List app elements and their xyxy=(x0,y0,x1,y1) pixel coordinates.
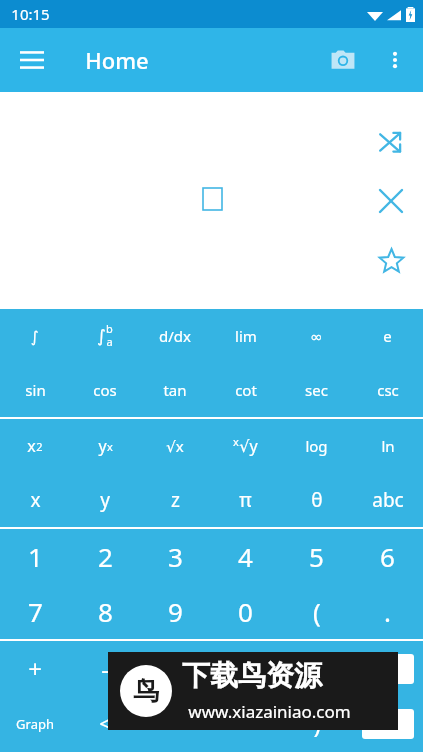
staticText: 下载鸟资源 xyxy=(182,658,322,693)
staticText: > xyxy=(169,710,181,737)
staticText: √y xyxy=(239,435,258,457)
button[interactable]: . xyxy=(352,584,423,639)
button[interactable]: x xyxy=(0,473,70,527)
button[interactable]: y xyxy=(70,473,140,527)
staticText: 9 xyxy=(168,594,183,629)
staticText: sec xyxy=(305,380,328,400)
button[interactable]: < xyxy=(70,696,140,751)
button[interactable]: 2 xyxy=(70,529,140,584)
staticText: y xyxy=(100,487,110,513)
button[interactable]: x xyxy=(0,419,70,473)
staticText: x xyxy=(233,434,239,449)
staticText: abc xyxy=(372,487,404,513)
staticText: www.xiazainiao.com xyxy=(188,700,351,723)
staticText: √x xyxy=(166,436,184,456)
staticText: ∞ xyxy=(310,328,323,345)
button[interactable]: √x xyxy=(140,419,210,473)
staticText: cot xyxy=(235,380,257,400)
button[interactable]: sec xyxy=(281,363,352,417)
button[interactable]: Clear xyxy=(369,179,413,223)
button[interactable]: 8 xyxy=(70,584,140,639)
button[interactable]: 4 xyxy=(210,529,281,584)
button[interactable]: Graph xyxy=(0,696,70,751)
button[interactable]: abc xyxy=(352,473,423,527)
button[interactable] xyxy=(352,641,423,696)
staticText: θ xyxy=(311,487,323,513)
button[interactable]: 3 xyxy=(140,529,210,584)
staticText: a xyxy=(106,334,113,349)
button[interactable]: ∞ xyxy=(281,309,352,363)
staticText: = xyxy=(310,652,324,685)
button[interactable]: · xyxy=(210,641,281,696)
staticText: x xyxy=(107,439,113,454)
button[interactable]: Favorite xyxy=(369,238,413,282)
button[interactable]: sin xyxy=(0,363,70,417)
staticText: - xyxy=(101,652,109,685)
staticText: e xyxy=(383,326,392,346)
button[interactable]: > xyxy=(140,696,210,751)
button[interactable]: θ xyxy=(281,473,352,527)
button[interactable]: 9 xyxy=(140,584,210,639)
staticText: 6 xyxy=(380,539,395,574)
staticText: 2 xyxy=(98,539,113,574)
button[interactable]: 1 xyxy=(0,529,70,584)
button[interactable]: z xyxy=(140,473,210,527)
staticText: log xyxy=(305,436,328,456)
staticText: b xyxy=(106,321,113,336)
button[interactable]: cot xyxy=(210,363,281,417)
staticText: 1 xyxy=(28,539,43,574)
button[interactable]: cos xyxy=(70,363,140,417)
staticText: ans xyxy=(233,714,258,734)
button[interactable]: = xyxy=(281,641,352,696)
staticText: 10:15 xyxy=(11,4,50,24)
button[interactable]: y xyxy=(70,419,140,473)
staticText: cos xyxy=(93,380,117,400)
button[interactable]: ) xyxy=(281,696,352,751)
staticText: ∫ xyxy=(31,328,39,345)
button[interactable]: Camera xyxy=(319,36,367,84)
button[interactable]: 6 xyxy=(352,529,423,584)
staticText: z xyxy=(171,487,180,513)
button[interactable]: Shuffle xyxy=(369,120,413,164)
staticText: y xyxy=(98,435,107,457)
button[interactable]: ln xyxy=(352,419,423,473)
staticText: 7 xyxy=(28,594,43,629)
button[interactable]: d/dx xyxy=(140,309,210,363)
staticText: 8 xyxy=(98,594,113,629)
staticText: + xyxy=(28,652,42,685)
button[interactable]: - xyxy=(70,641,140,696)
staticText: 4 xyxy=(238,539,253,574)
staticText: π xyxy=(239,487,252,513)
button[interactable]: π xyxy=(210,473,281,527)
button[interactable]: tan xyxy=(140,363,210,417)
staticText: tan xyxy=(163,380,187,400)
button[interactable]: lim xyxy=(210,309,281,363)
button[interactable]: x xyxy=(210,419,281,473)
staticText: 3 xyxy=(168,539,183,574)
staticText: sin xyxy=(25,380,46,400)
button[interactable]: log xyxy=(281,419,352,473)
staticText: 5 xyxy=(309,539,324,574)
button[interactable]: * xyxy=(140,641,210,696)
button[interactable]: = xyxy=(352,696,423,751)
button[interactable]: + xyxy=(0,641,70,696)
button[interactable]: 5 xyxy=(281,529,352,584)
button[interactable]: ∫ xyxy=(0,309,70,363)
staticText: Graph xyxy=(16,715,54,733)
staticText: < xyxy=(99,710,111,737)
button[interactable]: 0 xyxy=(210,584,281,639)
staticText: . xyxy=(384,594,391,629)
button[interactable]: ( xyxy=(281,584,352,639)
button[interactable]: ans xyxy=(210,696,281,751)
staticText: ) xyxy=(313,707,321,740)
staticText: Home xyxy=(85,45,149,75)
staticText: lim xyxy=(235,326,257,346)
staticText: ∫ xyxy=(97,326,106,346)
button[interactable]: ∫ xyxy=(70,309,140,363)
staticText: 鸟 xyxy=(133,675,159,708)
button[interactable]: 7 xyxy=(0,584,70,639)
button[interactable]: Open navigation menu xyxy=(8,36,56,84)
button[interactable]: More options xyxy=(371,36,419,84)
button[interactable]: csc xyxy=(352,363,423,417)
button[interactable]: e xyxy=(352,309,423,363)
